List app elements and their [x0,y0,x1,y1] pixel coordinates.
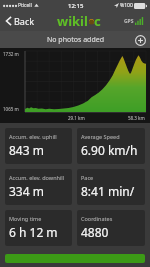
staticText: 334 m [9,183,44,199]
staticText: GPS [124,18,134,25]
staticText: No photos added [47,35,104,45]
staticText: c [94,12,101,30]
staticText: Accum. elev. downhill [9,174,65,181]
button[interactable]: Add photo [134,34,146,46]
staticText: wikil [57,12,88,30]
staticText: Accum. elev. uphill [9,133,57,140]
button[interactable]: Back [4,12,37,30]
staticText: Pticell [18,2,32,9]
button[interactable]: Accum. elev. uphill [5,128,72,164]
staticText: 6.90 km/h [81,142,138,158]
staticText: 6 h 12 m 10 s [9,224,70,240]
button[interactable]: Average Speed [77,128,145,164]
staticText: Average Speed [81,133,120,140]
staticText: %100 [120,2,133,9]
staticText: Pace [81,174,94,181]
staticText: 12:15 [68,2,84,10]
button[interactable]: Save trail [5,254,145,263]
staticText: Moving time [9,215,42,222]
button[interactable]: GPS signal [122,15,146,27]
button[interactable]: Coordinates [77,210,145,246]
staticText: 843 m [9,142,44,158]
button[interactable]: Moving time [5,210,72,246]
staticText: 1065 m [3,106,19,112]
staticText: 8:41 min/km [81,183,143,199]
staticText: 29.1 km [68,115,85,121]
staticText: 4880 [81,224,109,240]
staticText: 1732 m [3,51,19,57]
staticText: Back [14,15,35,27]
button[interactable]: Pace [77,169,145,205]
button[interactable]: Accum. elev. downhill [5,169,72,205]
staticText: Coordinates [81,215,113,222]
staticText: 58.3 km [128,115,145,121]
